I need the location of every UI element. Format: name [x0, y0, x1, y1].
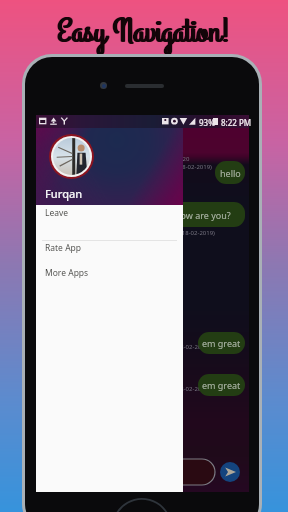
staticText: (18-02-2019): [177, 163, 212, 171]
staticText: :20: [181, 155, 190, 163]
staticText: em great: [202, 337, 241, 349]
staticText: Rate App: [45, 242, 82, 254]
staticText: (18-02-2019): [175, 385, 210, 393]
staticText: Easy Navigation!: [0, 10, 287, 55]
staticText: Easy Navigation!: [0, 10, 288, 55]
staticText: (18-02-2019): [180, 229, 215, 237]
staticText: 93%: [199, 117, 215, 128]
button[interactable]: [40, 459, 215, 485]
button[interactable]: More Apps: [36, 261, 183, 285]
staticText: hello: [220, 167, 241, 179]
staticText: how are you?: [175, 209, 231, 221]
button[interactable]: Send: [220, 462, 240, 482]
staticText: 8:22 PM: [221, 117, 252, 128]
staticText: Leave: [45, 207, 69, 219]
button[interactable]: Leave: [36, 201, 183, 225]
staticText: em great: [202, 379, 241, 391]
staticText: Furqan: [45, 186, 83, 201]
button[interactable]: Rate App: [36, 236, 183, 260]
staticText: Easy Navigation!: [1, 10, 288, 55]
staticText: More Apps: [45, 267, 89, 279]
staticText: (18-02-2019): [175, 343, 210, 351]
